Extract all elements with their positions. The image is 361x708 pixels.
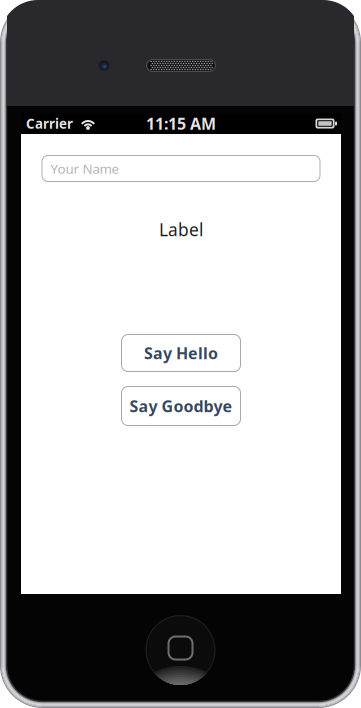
button[interactable]: Say Goodbye — [121, 386, 241, 426]
button[interactable]: Say Hello — [121, 334, 241, 372]
staticText: Carrier — [26, 115, 73, 132]
button[interactable]: Home — [145, 615, 215, 685]
staticText: 11:15 AM — [146, 113, 216, 134]
staticText: Label — [159, 218, 203, 241]
staticText: Your Name — [50, 160, 119, 177]
staticText: Say Goodbye — [129, 395, 232, 417]
button[interactable]: Your Name — [41, 155, 320, 182]
staticText: Say Hello — [144, 342, 218, 364]
